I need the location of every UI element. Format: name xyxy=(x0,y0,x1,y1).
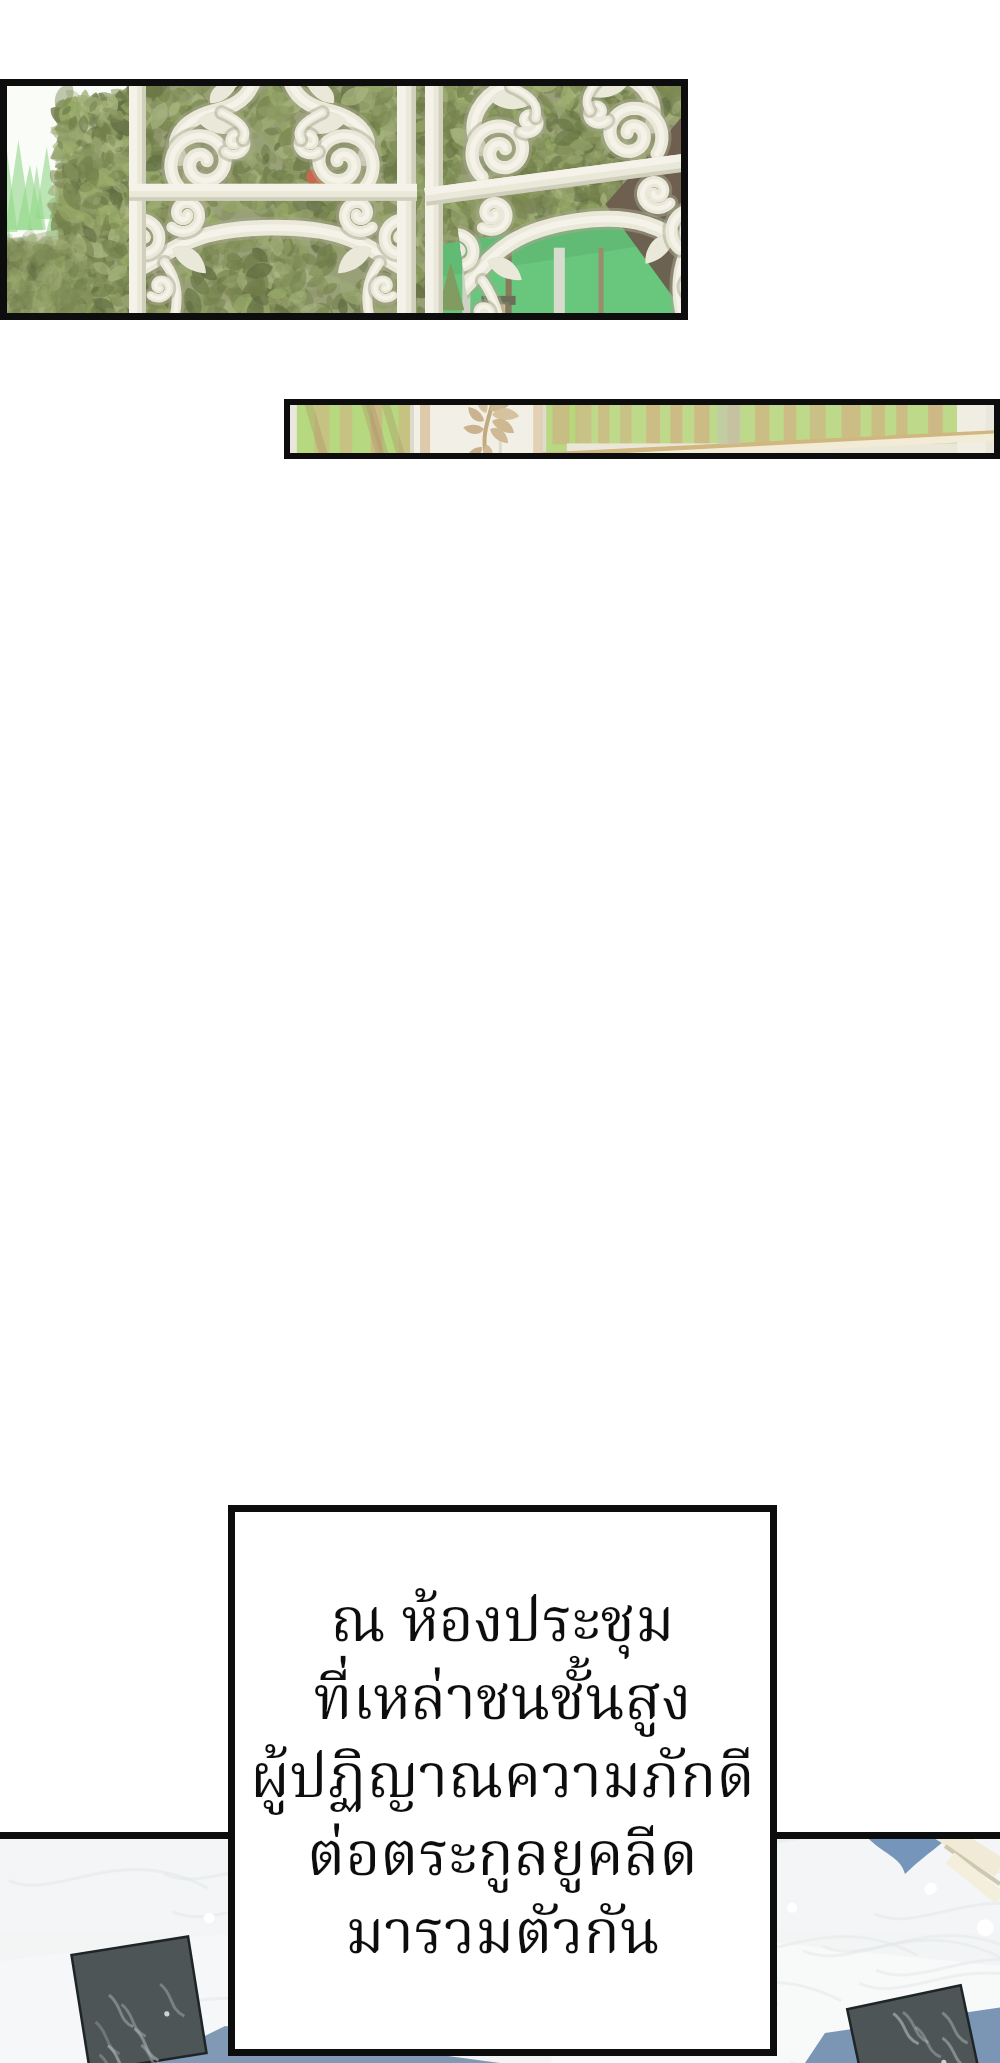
button[interactable]: Comic page, tap to toggle reader control… xyxy=(0,0,1000,2063)
staticText: ณ ห้องประชุม ที่เหล่าชนชั้นสูง ผู้ปฏิญาณ… xyxy=(228,1577,777,1985)
